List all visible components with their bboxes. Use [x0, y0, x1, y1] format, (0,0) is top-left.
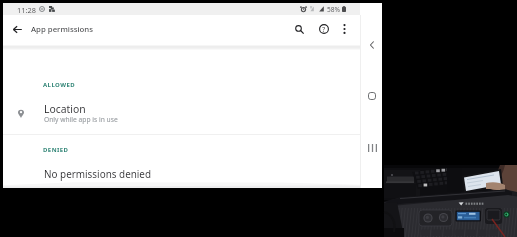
button[interactable]: Back	[362, 35, 382, 55]
button[interactable]: Location	[3, 95, 360, 130]
staticText: 58%	[327, 5, 341, 14]
staticText: ?	[322, 24, 326, 34]
button[interactable]: Search	[288, 18, 310, 40]
staticText: Only while app is in use	[44, 115, 118, 124]
button[interactable]: Navigate up	[6, 18, 28, 40]
staticText: No permissions denied	[44, 167, 152, 180]
button[interactable]: Help	[313, 18, 335, 40]
button[interactable]: More options	[333, 18, 355, 40]
staticText: App permissions	[31, 24, 94, 35]
button[interactable]: Home	[362, 86, 382, 106]
staticText: DENIED	[43, 146, 69, 154]
button[interactable]: Recent apps	[362, 138, 382, 158]
staticText: ALLOWED	[43, 81, 76, 89]
staticText: Location	[44, 102, 86, 116]
staticText: 11:28	[17, 5, 36, 15]
